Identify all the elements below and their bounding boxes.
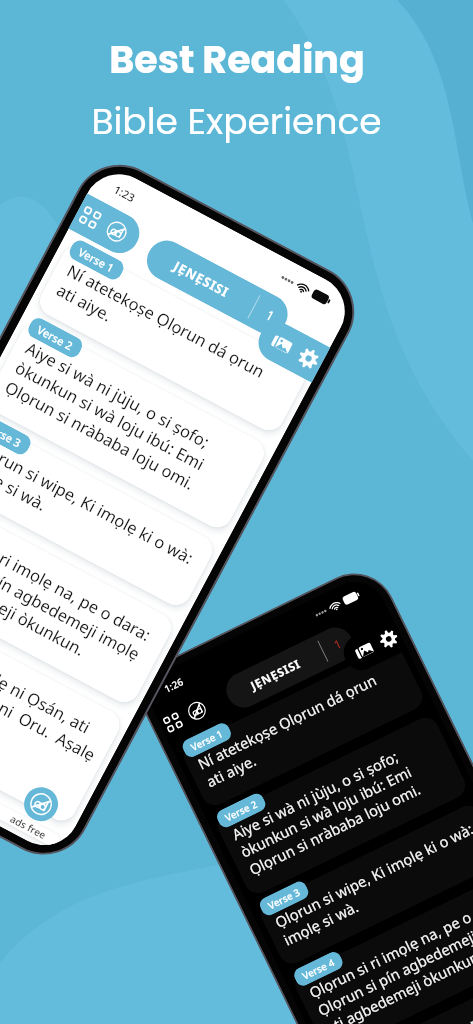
staticText: ads free — [8, 811, 49, 842]
staticText: Ní atetekọṣe Ọlọrun dá ọrun — [64, 259, 295, 396]
button[interactable]: Settings — [372, 622, 405, 656]
button[interactable]: Images — [263, 325, 301, 363]
staticText: Aiye si wà ni jùju, o si ṣofo; — [22, 336, 254, 474]
button[interactable]: Chapters — [154, 686, 223, 744]
staticText: 1:23 — [111, 182, 138, 205]
button[interactable]: Ní atetekọṣe Ọlọrun dá ọrun — [179, 643, 427, 810]
staticText: Verse 2 — [34, 322, 76, 353]
button[interactable]: Ní atetekọṣe Ọlọrun dá ọrun — [34, 241, 311, 436]
staticText: Ọlọrun si pín agbedemeji imọlẹ — [0, 531, 151, 668]
button[interactable]: Ọlọrun si wipe, Ki imọlẹ ki o wà: — [0, 416, 218, 611]
staticText: ati aiye. — [203, 675, 412, 791]
button[interactable]: Verse 1 — [66, 237, 127, 283]
button[interactable]: Verse 1 — [180, 721, 234, 760]
staticText: ati agbedemeji òkunkun. — [0, 550, 141, 687]
staticText: JẸNẸSISI — [248, 655, 304, 693]
staticText: Verse 4 — [300, 955, 337, 982]
button[interactable]: Verse 2 — [25, 315, 85, 360]
staticText: JẸNẸSISI — [171, 257, 233, 301]
staticText: imọlẹ si wà. — [0, 453, 192, 590]
staticText: Verse 3 — [265, 885, 302, 912]
staticText: Ọlọrun si nràbaba loju omi. — [246, 763, 455, 879]
staticText: Ní atetekọṣe Ọlọrun dá ọrun — [194, 658, 403, 773]
staticText: àárọ si jẹ́ ọjọ́ kini. — [0, 668, 78, 806]
staticText: Ọlọrun si wipe, Ki imọlẹ ki o wà: — [0, 434, 203, 571]
button[interactable]: Remove ads — [18, 781, 64, 827]
staticText: Verse 2 — [223, 797, 260, 824]
button[interactable]: Ads free — [98, 213, 136, 251]
staticText: Best Reading — [109, 33, 365, 86]
button[interactable]: Ads free — [180, 694, 214, 727]
staticText: Ọlọrun si ri imọlẹ na, pe o dara: — [306, 886, 473, 1002]
staticText: Ọlọrun si wipe, Ki imọlẹ ki o wà: — [271, 816, 473, 932]
staticText: òkunkun si wà loju ibú: Emi — [12, 356, 244, 493]
staticText: òkunkun ni o pè ni Oru. Aṣalẹ ati — [357, 992, 473, 1024]
button[interactable]: Ọlọrun si pè imọlẹ ni Ọsán, ati — [0, 590, 125, 826]
button[interactable]: Images — [251, 315, 330, 383]
staticText: 1:26 — [162, 675, 185, 695]
button[interactable]: Verse 3 — [257, 879, 311, 918]
staticText: Ọlọrun si ri imọlẹ na, pe o dara: — [0, 511, 161, 649]
button[interactable]: Ọlọrun si ri imọlẹ na, pe o dara: — [291, 871, 473, 1024]
staticText: Verse 1 — [76, 244, 117, 276]
button[interactable]: Ọlọrun si pè imọlẹ ni Ọsán, ati — [334, 959, 473, 1024]
button[interactable]: Aiye si wà ni jùju, o si ṣofo; — [0, 318, 270, 533]
button[interactable]: Aiye si wà ni jùju, o si ṣofo; — [213, 713, 470, 898]
button[interactable]: Images — [338, 617, 408, 676]
button[interactable]: JẸNẸSISI — [140, 234, 295, 341]
button[interactable]: Chapters — [71, 199, 109, 236]
button[interactable]: Verse 3 — [0, 412, 34, 457]
staticText: Ọlọrun si pè imọlẹ ni Ọsán, ati — [0, 608, 110, 746]
staticText: Bible Experience — [91, 96, 382, 146]
button[interactable]: JẸNẸSISI — [220, 621, 359, 713]
staticText: òkunkun si wà loju ibú: Emi — [237, 746, 446, 861]
staticText: 1 — [331, 635, 344, 653]
staticText: 1 — [262, 306, 278, 325]
staticText: Aiye si wà ni jùju, o si ṣofo; — [228, 728, 438, 844]
staticText: ati aiye. — [53, 278, 285, 415]
button[interactable]: Verse 2 — [214, 791, 268, 830]
button[interactable]: Ọlọrun si wipe, Ki òfurufú ki o — [0, 709, 62, 849]
staticText: Ọlọrun si nràbaba loju omi. — [2, 375, 234, 513]
button[interactable]: Ọlọrun si wipe, Ki imọlẹ ki o wà: — [256, 801, 473, 968]
staticText: òkunkun ni o pè ni Oru. Aṣalẹ ati — [0, 628, 99, 786]
staticText: Verse 3 — [0, 419, 24, 451]
button[interactable]: Ọlọrun si ri imọlẹ na, pe o dara: — [0, 493, 177, 708]
button[interactable]: Settings — [290, 340, 327, 377]
button[interactable]: Chapters — [156, 706, 190, 739]
staticText: Verse 1 — [188, 726, 225, 754]
button[interactable]: Verse 4 — [291, 949, 345, 988]
staticText: ati agbedemeji òkunkun. — [323, 922, 473, 1024]
staticText: Ọlọrun si pín agbedemeji imọlẹ — [314, 904, 473, 1020]
staticText: imọlẹ si wà. — [280, 834, 473, 949]
staticText: Ọlọrun si pè imọlẹ ni Ọsán, ati — [349, 974, 473, 1024]
button[interactable]: Images — [348, 634, 381, 667]
button[interactable]: Chapters — [68, 193, 146, 260]
